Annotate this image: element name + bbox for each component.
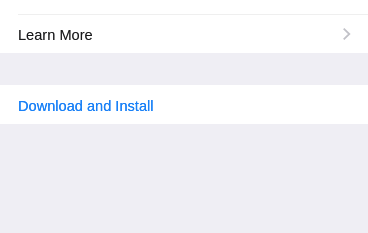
- staticText: Learn More: [18, 27, 93, 43]
- button[interactable]: Download and Install: [0, 85, 368, 124]
- staticText: Download and Install: [18, 98, 154, 114]
- button[interactable]: Learn More: [0, 15, 368, 53]
- other: Open Learn More: [343, 28, 350, 40]
